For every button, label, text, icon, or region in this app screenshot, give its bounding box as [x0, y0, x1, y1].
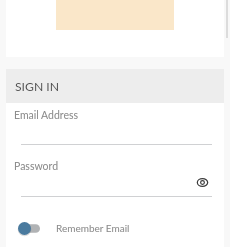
staticText: SIGN IN: [15, 79, 60, 94]
staticText: Remember Email: [56, 222, 130, 234]
staticText: Password: [14, 160, 59, 173]
button[interactable]: SIGN IN: [6, 69, 224, 103]
button[interactable]: Remember Email: [18, 221, 130, 235]
button[interactable]: Password: [6, 153, 224, 197]
button[interactable]: Email Address: [6, 103, 224, 147]
staticText: Email Address: [14, 109, 79, 122]
button[interactable]: Show password: [194, 174, 211, 191]
